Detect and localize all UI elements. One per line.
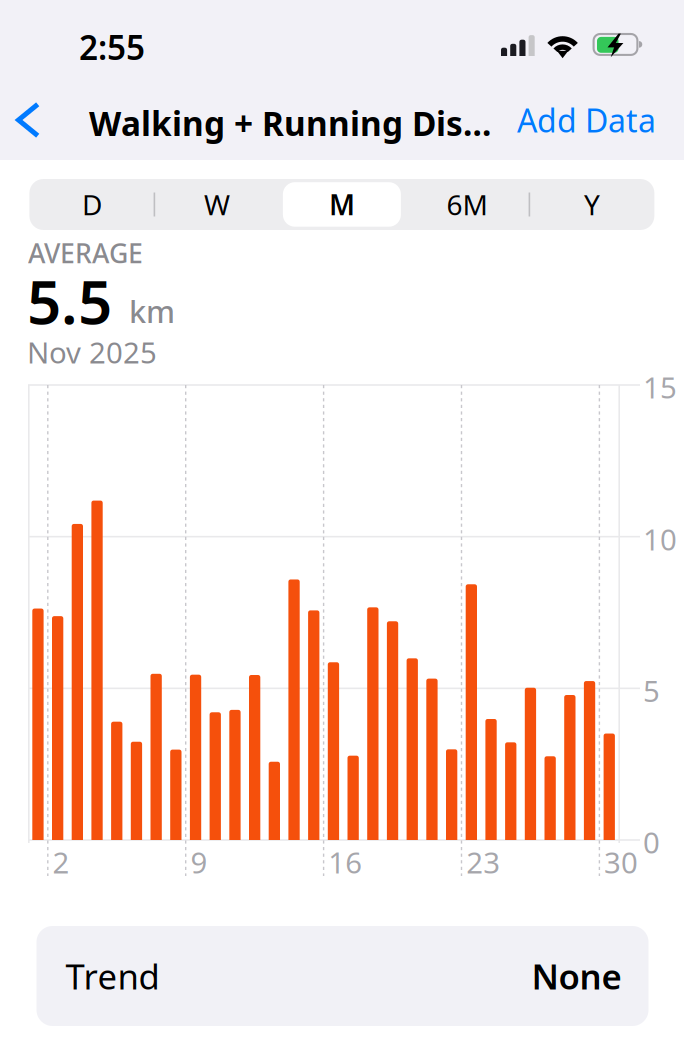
staticText: 0 <box>643 822 660 861</box>
staticText: M <box>329 186 355 223</box>
button[interactable]: Y <box>529 179 654 230</box>
staticText: Y <box>584 186 600 223</box>
button[interactable]: Back <box>0 88 56 152</box>
button[interactable]: Trend <box>36 926 648 1026</box>
staticText: Trend <box>65 953 159 999</box>
staticText: 2 <box>52 842 69 881</box>
staticText: 6M <box>446 186 487 223</box>
staticText: Walking + Running Dista… <box>89 101 492 145</box>
staticText: 2:55 <box>79 25 145 69</box>
staticText: Nov 2025 <box>27 332 157 371</box>
staticText: 10 <box>643 519 677 558</box>
staticText: 15 <box>643 367 677 406</box>
button[interactable]: W <box>154 179 279 230</box>
staticText: 30 <box>604 842 638 881</box>
staticText: km <box>129 291 175 331</box>
staticText: W <box>204 186 230 223</box>
staticText: 23 <box>466 842 500 881</box>
button[interactable]: Add Data <box>480 92 656 148</box>
staticText: Add Data <box>517 99 656 141</box>
button[interactable]: D <box>29 179 154 230</box>
staticText: D <box>82 186 102 223</box>
button[interactable]: M <box>279 179 404 230</box>
staticText: 9 <box>190 842 207 881</box>
staticText: 5.5 <box>27 261 112 341</box>
staticText: AVERAGE <box>28 235 143 271</box>
button[interactable]: 6M <box>404 179 529 230</box>
staticText: 16 <box>328 842 362 881</box>
staticText: None <box>531 953 621 999</box>
staticText: 5 <box>643 671 660 710</box>
